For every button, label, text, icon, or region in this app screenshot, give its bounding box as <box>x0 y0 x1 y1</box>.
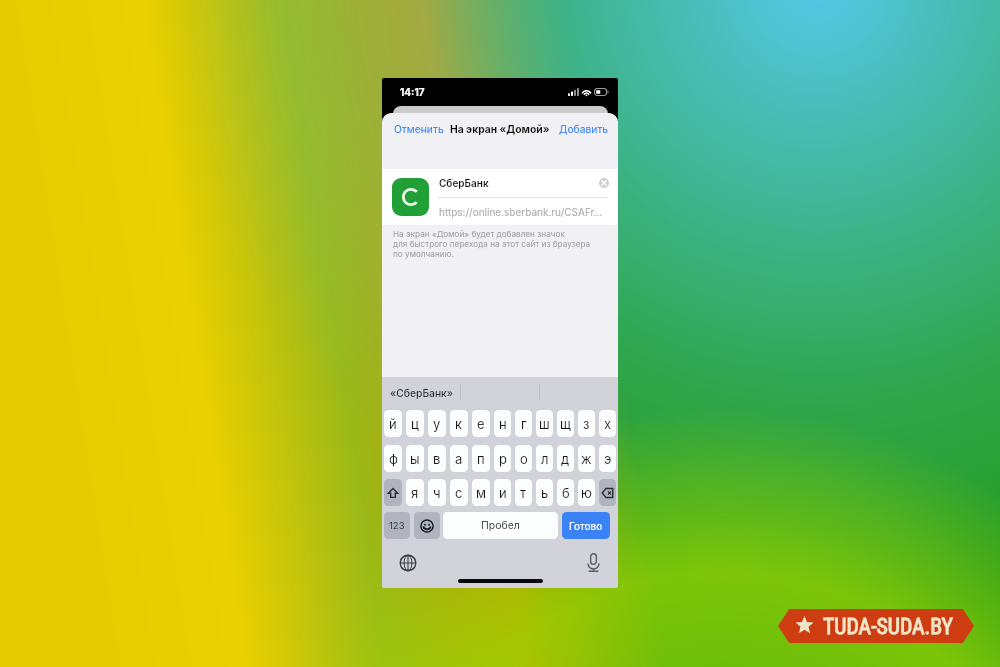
button[interactable]: 123 <box>384 512 410 539</box>
staticText: х <box>604 416 612 432</box>
staticText: п <box>477 451 485 467</box>
button[interactable]: а <box>450 445 468 472</box>
staticText: й <box>389 416 397 432</box>
button[interactable]: щ <box>557 410 574 437</box>
staticText: Добавить <box>559 123 609 135</box>
button[interactable]: п <box>472 445 490 472</box>
staticText: э <box>604 451 612 467</box>
staticText: в <box>433 451 441 467</box>
staticText: На экран «Домой» <box>450 123 550 135</box>
button[interactable]: е <box>472 410 490 437</box>
staticText: я <box>411 485 419 501</box>
button[interactable]: Пробел <box>443 512 558 539</box>
button[interactable]: Удалить <box>599 479 616 506</box>
button[interactable]: х <box>599 410 616 437</box>
button[interactable]: я <box>406 479 424 506</box>
staticText: по умолчанию. <box>393 249 454 259</box>
staticText: д <box>561 451 570 467</box>
button[interactable]: ш <box>536 410 553 437</box>
staticText: На экран «Домой» будет добавлен значок <box>393 229 565 239</box>
button[interactable]: и <box>494 479 511 506</box>
button[interactable]: в <box>428 445 446 472</box>
button[interactable]: ч <box>428 479 446 506</box>
staticText: Отменить <box>394 123 444 135</box>
staticText: ь <box>541 485 549 501</box>
button[interactable]: з <box>578 410 595 437</box>
staticText: «СберБанк» <box>390 387 454 399</box>
staticText: щ <box>560 416 571 432</box>
button[interactable]: о <box>515 445 532 472</box>
button[interactable]: д <box>557 445 574 472</box>
staticText: у <box>433 416 441 432</box>
button[interactable]: ь <box>536 479 553 506</box>
staticText: ы <box>410 451 420 467</box>
staticText: Пробел <box>481 519 520 532</box>
button[interactable]: у <box>428 410 446 437</box>
button[interactable]: т <box>515 479 532 506</box>
staticText: с <box>455 485 463 501</box>
button[interactable]: г <box>515 410 532 437</box>
staticText: а <box>455 451 463 467</box>
staticText: о <box>520 451 528 467</box>
staticText: и <box>499 485 507 501</box>
button[interactable]: й <box>384 410 402 437</box>
staticText: 14:17 <box>400 86 425 98</box>
staticText: г <box>521 416 527 432</box>
staticText: для быстрого перехода на этот сайт из бр… <box>393 239 591 249</box>
staticText: Готово <box>569 520 603 532</box>
staticText: ф <box>389 451 398 467</box>
staticText: р <box>499 451 507 467</box>
staticText: б <box>562 485 570 501</box>
staticText: 123 <box>389 520 405 531</box>
staticText: л <box>541 451 549 467</box>
button[interactable]: Сменить язык <box>399 554 417 572</box>
staticText: ц <box>411 416 419 432</box>
button[interactable]: ж <box>578 445 595 472</box>
staticText: ш <box>539 416 550 432</box>
staticText: https://online.sberbank.ru/CSAFr... <box>439 206 603 218</box>
button[interactable]: к <box>450 410 468 437</box>
button[interactable]: Добавить <box>555 119 613 139</box>
button[interactable]: б <box>557 479 574 506</box>
button[interactable]: Очистить <box>597 176 611 190</box>
button[interactable]: Готово <box>562 512 610 539</box>
button[interactable]: ф <box>384 445 402 472</box>
staticText: ю <box>581 485 592 501</box>
button[interactable]: ц <box>406 410 424 437</box>
staticText: TUDA-SUDA.BY <box>823 614 953 639</box>
button[interactable]: э <box>599 445 616 472</box>
staticText: к <box>455 416 463 432</box>
staticText: м <box>476 485 487 501</box>
staticText: е <box>477 416 485 432</box>
button[interactable]: ю <box>578 479 595 506</box>
button[interactable]: с <box>450 479 468 506</box>
staticText: т <box>520 485 527 501</box>
staticText: ч <box>433 485 441 501</box>
button[interactable]: Диктовка <box>587 553 600 572</box>
staticText: ж <box>581 451 592 467</box>
staticText: н <box>499 416 507 432</box>
staticText: з <box>583 416 590 432</box>
button[interactable]: р <box>494 445 511 472</box>
button[interactable]: м <box>472 479 490 506</box>
button[interactable]: Отменить <box>390 119 448 139</box>
button[interactable]: н <box>494 410 511 437</box>
button[interactable]: л <box>536 445 553 472</box>
button[interactable]: Shift <box>384 479 402 506</box>
staticText: СберБанк <box>439 177 489 189</box>
button[interactable]: Эмодзи <box>414 512 440 539</box>
button[interactable]: ы <box>406 445 424 472</box>
